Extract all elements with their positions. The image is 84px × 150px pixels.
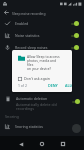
button[interactable]: Record sleep noises — [0, 41, 84, 53]
staticText: ALLOW — [65, 83, 72, 88]
staticText: Don't ask again — [24, 76, 51, 81]
button[interactable]: ALLOW — [63, 81, 72, 90]
staticText: 1 of 2 — [18, 83, 27, 88]
button[interactable]: Automatic deletion — [0, 94, 84, 112]
button[interactable]: Home — [37, 139, 47, 149]
button[interactable]: Noise statistics — [0, 29, 84, 41]
staticText: Automatic deletion — [16, 96, 48, 101]
staticText: on your device? — [27, 66, 52, 70]
staticText: Snoring — [5, 114, 19, 119]
staticText: Noise statistics — [15, 33, 40, 38]
staticText: DENY — [48, 83, 58, 88]
button[interactable]: Snoring statistics — [0, 121, 84, 132]
staticText: Snoring statistics — [15, 124, 44, 129]
staticText: Sleep noise recording — [12, 11, 46, 15]
staticText: photos, media and files — [27, 58, 61, 66]
button[interactable]: Don't ask again — [16, 74, 53, 83]
button[interactable]: DENY — [46, 81, 60, 90]
button[interactable]: Back — [2, 8, 11, 17]
staticText: Enabled — [15, 21, 29, 26]
button[interactable]: Back — [16, 139, 26, 149]
button[interactable]: Record — [72, 124, 81, 133]
staticText: Automatically delete old recordings — [16, 102, 71, 111]
staticText: Record sleep noises — [15, 45, 48, 50]
staticText: Allow Sleep to access — [27, 54, 60, 58]
button[interactable]: Enabled — [0, 17, 84, 29]
button[interactable]: Recents — [58, 139, 68, 149]
